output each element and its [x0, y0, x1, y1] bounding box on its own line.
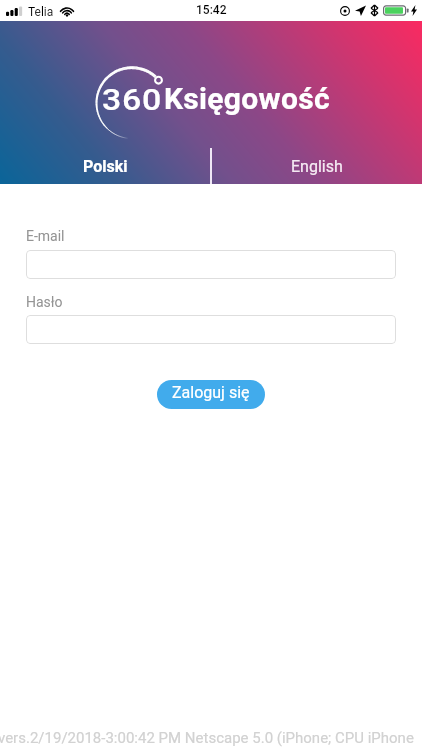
staticText: Hasło: [26, 294, 63, 310]
button[interactable]: Polski: [0, 151, 211, 184]
staticText: 15:42: [196, 3, 227, 17]
staticText: English: [291, 157, 343, 176]
staticText: Księgowość: [164, 81, 330, 116]
button[interactable]: Zaloguj się: [157, 380, 265, 409]
button[interactable]: English: [211, 151, 422, 184]
button[interactable]: [26, 250, 396, 279]
staticText: 360: [102, 82, 162, 117]
staticText: Telia: [28, 5, 54, 19]
staticText: Zaloguj się: [172, 383, 250, 402]
staticText: vers.2/19/2018-3:00:42 PM Netscape 5.0 (…: [0, 729, 414, 747]
staticText: E-mail: [26, 228, 65, 244]
staticText: Polski: [83, 157, 128, 176]
button[interactable]: [26, 315, 396, 344]
